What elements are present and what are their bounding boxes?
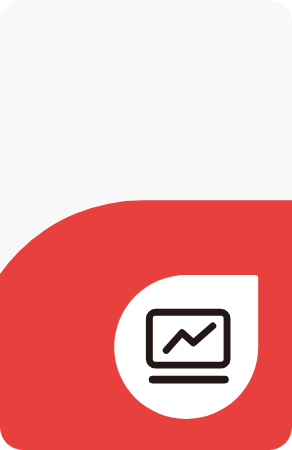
button[interactable]: Analytics app launch screen — [0, 0, 292, 450]
